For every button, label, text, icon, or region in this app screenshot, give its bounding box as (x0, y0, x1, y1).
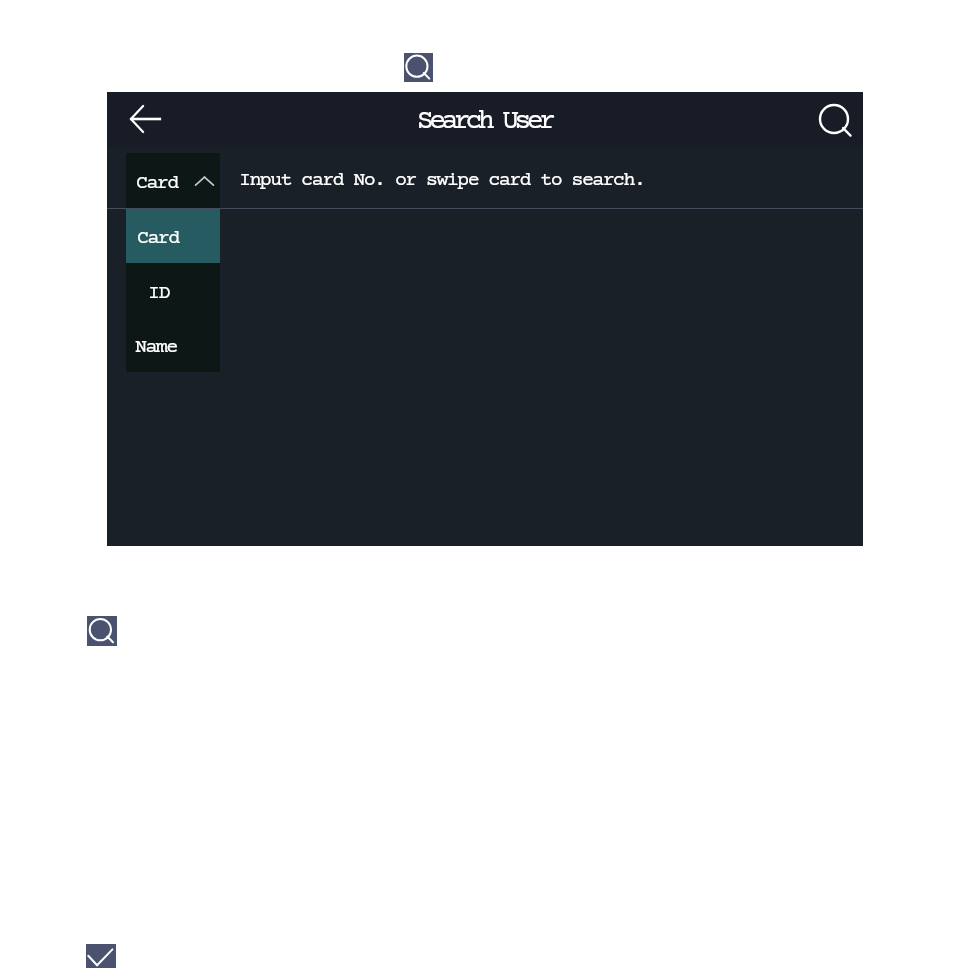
button[interactable]: ID (126, 263, 220, 318)
staticText: Name (135, 336, 177, 358)
staticText: Card (136, 172, 178, 194)
staticText: Card (137, 227, 179, 249)
button[interactable]: Search (404, 53, 433, 82)
button[interactable]: Card (126, 153, 220, 208)
button[interactable]: Search (87, 616, 117, 646)
staticText: Input card No. or swipe card to search. (239, 169, 645, 191)
button[interactable]: Card (126, 209, 220, 263)
button[interactable]: Back (120, 93, 172, 145)
staticText: ID (148, 282, 169, 304)
staticText: Search User (417, 106, 552, 137)
button[interactable]: Confirm (86, 944, 116, 968)
button[interactable]: Search (808, 93, 860, 145)
button[interactable]: Name (126, 318, 220, 372)
